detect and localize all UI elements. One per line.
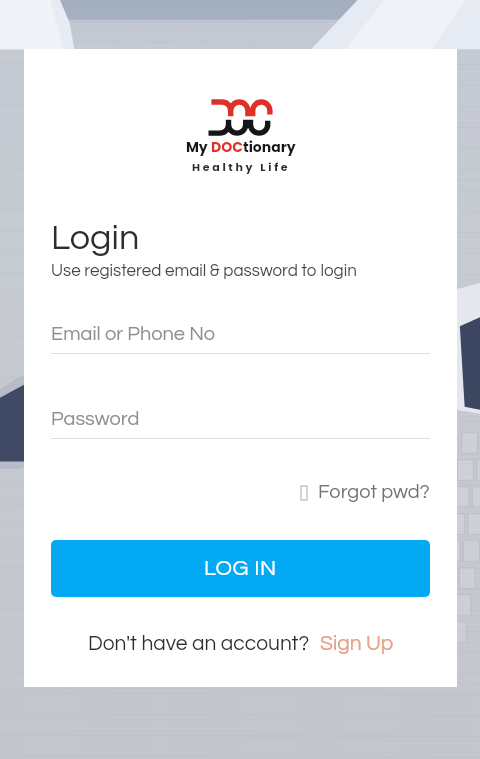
staticText: Forgot pwd?	[318, 482, 430, 503]
staticText: Use registered email & password to login	[51, 262, 357, 280]
button[interactable]: Forgot pwd?	[301, 478, 430, 507]
button[interactable]: Password	[51, 409, 430, 439]
staticText: Login	[51, 219, 140, 256]
staticText: My	[186, 137, 211, 157]
staticText: Email or Phone No	[51, 324, 216, 345]
staticText: DOC	[211, 137, 243, 157]
staticText: Healthy Life	[192, 159, 291, 174]
button[interactable]: LOG IN	[51, 540, 430, 597]
button[interactable]: Email or Phone No	[51, 324, 430, 354]
staticText: Don't have an account?	[88, 633, 310, 655]
staticText: Sign Up	[320, 633, 394, 655]
staticText: Password	[51, 409, 140, 430]
button[interactable]: Sign Up	[320, 633, 394, 655]
staticText: LOG IN	[204, 557, 277, 580]
staticText: tionary	[243, 137, 296, 157]
